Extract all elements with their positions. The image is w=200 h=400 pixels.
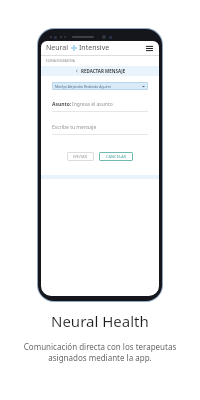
- button[interactable]: Marilyn Alejandro Redondo Aguirre: [52, 82, 148, 90]
- button[interactable]: Open menu: [145, 44, 154, 53]
- staticText: Marilyn Alejandro Redondo Aguirre: [55, 84, 112, 89]
- staticText: ENVIAR: [73, 154, 88, 159]
- button[interactable]: ENVIAR: [67, 152, 94, 161]
- button[interactable]: Escribe tu mensaje: [52, 124, 148, 131]
- button[interactable]: REDACTAR MENSAJE: [41, 66, 159, 76]
- staticText: CANCELAR: [106, 154, 127, 159]
- staticText: Intensive: [79, 43, 110, 53]
- staticText: Ingresa el asunto: [72, 101, 113, 108]
- staticText: Neural: [46, 43, 69, 53]
- button[interactable]: CANCELAR: [99, 152, 133, 161]
- staticText: Asunto:: [52, 101, 72, 108]
- staticText: Neural Health: [51, 311, 149, 331]
- button[interactable]: Asunto:: [52, 101, 148, 108]
- staticText: REDACTAR MENSAJE: [81, 68, 126, 74]
- staticText: Comunicación directa con los terapeutas …: [14, 341, 186, 363]
- staticText: ELENA KOLBASOVA: [46, 59, 75, 63]
